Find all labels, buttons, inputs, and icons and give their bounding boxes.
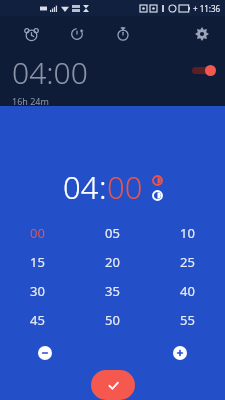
button[interactable]: 55: [150, 305, 225, 334]
button[interactable]: Alarm enabled toggle: [192, 64, 216, 76]
staticText: 20: [105, 253, 120, 271]
button[interactable]: 15: [0, 247, 75, 276]
button[interactable]: Increase: [173, 346, 187, 360]
button[interactable]: 20: [75, 247, 150, 276]
button[interactable]: 00: [0, 218, 75, 247]
staticText: 45: [30, 311, 45, 329]
button[interactable]: 40: [150, 276, 225, 305]
button[interactable]: 04:00: [0, 52, 225, 106]
button[interactable]: Hour mode: [151, 174, 163, 186]
button[interactable]: Decrease: [38, 346, 52, 360]
button[interactable]: Minute mode: [151, 189, 163, 201]
button[interactable]: 25: [150, 247, 225, 276]
staticText: 00: [30, 224, 45, 242]
staticText: 25: [180, 253, 195, 271]
button[interactable]: 00: [107, 166, 143, 208]
staticText: 55: [180, 311, 195, 329]
staticText: 05: [105, 224, 120, 242]
button[interactable]: Confirm: [91, 370, 135, 400]
staticText: 16h 24m: [12, 95, 49, 106]
staticText: + 11:36: [193, 3, 221, 14]
staticText: 30: [30, 282, 45, 300]
staticText: 04:00: [12, 52, 88, 93]
button[interactable]: Stopwatch: [106, 17, 140, 51]
button[interactable]: 50: [75, 305, 150, 334]
staticText: 35: [105, 282, 120, 300]
button[interactable]: Settings: [187, 19, 217, 49]
button[interactable]: 45: [0, 305, 75, 334]
staticText: 15: [30, 253, 45, 271]
staticText: :: [99, 166, 107, 208]
staticText: 50: [105, 311, 120, 329]
button[interactable]: Alarm: [14, 17, 48, 51]
button[interactable]: 05: [75, 218, 150, 247]
staticText: 10: [180, 224, 195, 242]
staticText: 40: [180, 282, 195, 300]
button[interactable]: 30: [0, 276, 75, 305]
button[interactable]: 10: [150, 218, 225, 247]
button[interactable]: 35: [75, 276, 150, 305]
button[interactable]: 04: [63, 166, 99, 208]
button[interactable]: Timer: [60, 17, 94, 51]
